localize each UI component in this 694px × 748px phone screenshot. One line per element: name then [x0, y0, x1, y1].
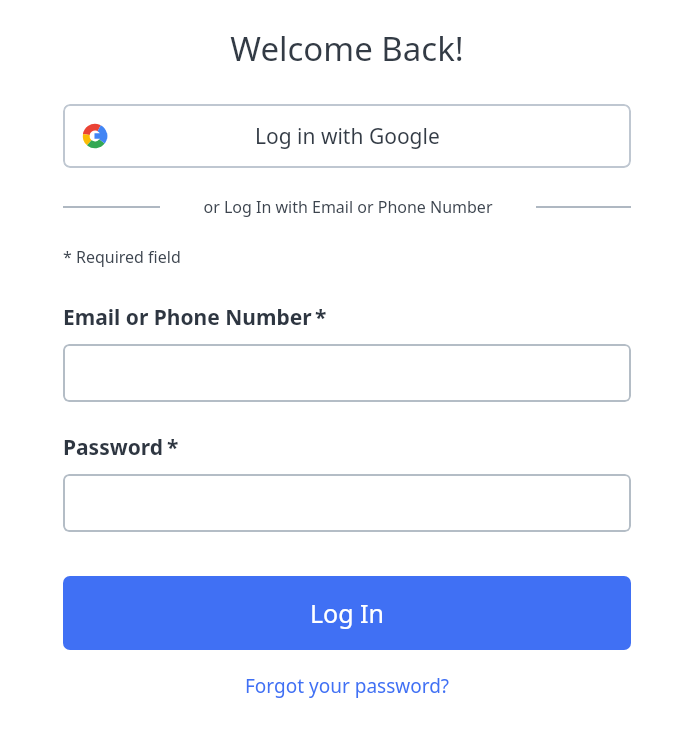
button[interactable]: Log In [63, 576, 631, 650]
staticText: or Log In with Email or Phone Number [170, 196, 526, 218]
button[interactable]: Google logo [63, 104, 631, 168]
staticText: Log in with Google [255, 122, 440, 151]
button[interactable] [63, 344, 631, 402]
staticText: * [315, 303, 327, 332]
button[interactable]: Forgot your password? [239, 670, 456, 702]
button[interactable] [63, 474, 631, 532]
staticText: * [167, 433, 179, 462]
other: Google logo [82, 123, 108, 149]
staticText: Log In [310, 596, 385, 630]
staticText: Password [63, 433, 164, 462]
staticText: * Required field [63, 246, 181, 268]
staticText: Email or Phone Number [63, 303, 312, 332]
staticText: Welcome Back! [63, 26, 631, 71]
staticText: Forgot your password? [245, 673, 450, 699]
